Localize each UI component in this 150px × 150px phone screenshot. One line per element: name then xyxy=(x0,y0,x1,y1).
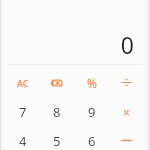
button[interactable]: 6 xyxy=(74,126,109,150)
button[interactable]: Divide xyxy=(109,68,144,97)
staticText: 9 xyxy=(88,103,96,121)
button[interactable]: 8 xyxy=(40,97,74,126)
staticText: 6 xyxy=(88,132,96,150)
staticText: × xyxy=(123,104,130,120)
button[interactable]: 5 xyxy=(40,126,74,150)
button[interactable]: Multiply xyxy=(109,97,144,126)
button[interactable]: 9 xyxy=(74,97,109,126)
button[interactable]: Backspace xyxy=(40,68,74,97)
staticText: AC xyxy=(17,77,29,89)
staticText: % xyxy=(87,75,97,91)
staticText: 5 xyxy=(53,132,61,150)
button[interactable]: Minus xyxy=(109,126,144,150)
staticText: 8 xyxy=(53,103,61,121)
staticText: 0 xyxy=(120,29,134,60)
button[interactable]: 7 xyxy=(6,97,40,126)
button[interactable]: Percent xyxy=(74,68,109,97)
staticText: 7 xyxy=(19,103,27,121)
button[interactable]: 4 xyxy=(6,126,40,150)
button[interactable]: All clear xyxy=(6,68,40,97)
staticText: 4 xyxy=(19,132,27,150)
